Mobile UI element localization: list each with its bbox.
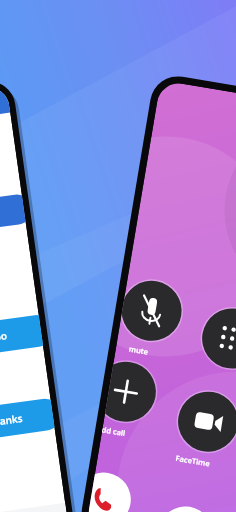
button[interactable]: Messaging and call screen phone mockups (0, 0, 236, 512)
